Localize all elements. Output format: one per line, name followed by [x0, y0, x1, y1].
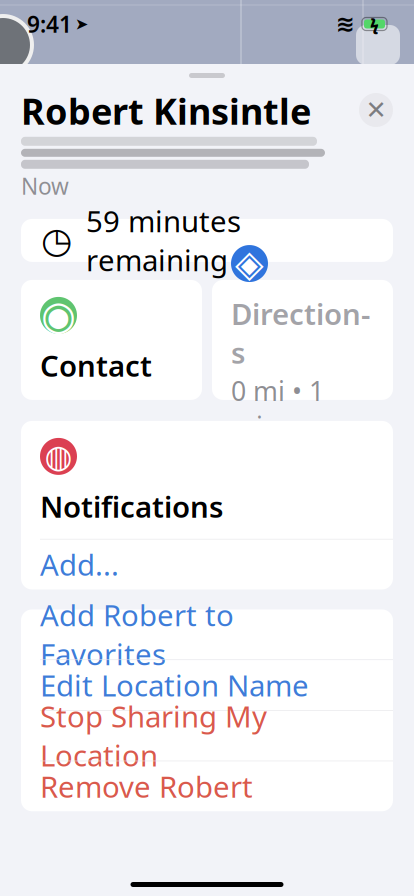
- staticText: ◷: [41, 220, 72, 261]
- staticText: ≋: [336, 11, 355, 37]
- staticText: Add Robert to Favorites: [40, 595, 234, 673]
- staticText: 59 minutes remaining: [86, 201, 241, 279]
- staticText: Add...: [40, 545, 119, 584]
- staticText: 0 mi • 1 min: [231, 373, 324, 444]
- staticText: ϟ: [370, 13, 379, 35]
- staticText: ◍: [44, 438, 72, 474]
- button[interactable]: ◉: [21, 280, 202, 400]
- button[interactable]: Close: [359, 93, 393, 127]
- staticText: Now: [21, 171, 69, 201]
- staticText: Notifications: [40, 487, 223, 526]
- staticText: Contact: [40, 346, 152, 385]
- button[interactable]: Add Robert to Favorites: [21, 609, 393, 659]
- staticText: Robert Kinsintle: [21, 87, 311, 135]
- button[interactable]: Remove Robert: [21, 761, 393, 811]
- staticText: ✕: [365, 96, 386, 124]
- staticText: 9:41: [27, 9, 72, 39]
- staticText: ◉: [41, 293, 76, 338]
- staticText: ➤: [75, 15, 88, 33]
- button[interactable]: Edit Location Name: [21, 660, 393, 710]
- staticText: Stop Sharing My Location: [40, 697, 267, 775]
- button[interactable]: Add...: [21, 539, 393, 589]
- staticText: ◈: [235, 242, 264, 285]
- button[interactable]: ◈: [212, 280, 393, 400]
- button[interactable]: Stop Sharing My Location: [21, 711, 393, 761]
- staticText: Edit Location Name: [40, 666, 309, 705]
- staticText: Remove Robert: [40, 767, 253, 806]
- staticText: Directions: [231, 294, 370, 372]
